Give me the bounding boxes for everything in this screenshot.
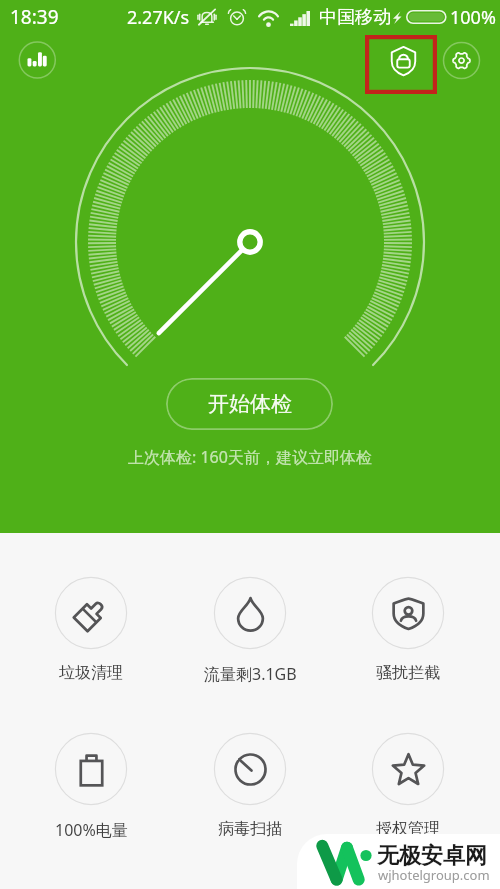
button[interactable]: 流量剩3.1GB (192, 569, 308, 694)
staticText: 中国移动 (319, 6, 391, 29)
staticText: wjhotelgroup.com (378, 866, 490, 884)
staticText: 2.27K/s (127, 5, 190, 30)
staticText: 100%电量 (55, 819, 128, 841)
button[interactable]: 授权管理 (350, 725, 466, 850)
staticText: 上次体检: 160天前，建议立即体检 (128, 446, 372, 468)
button[interactable]: 开始体检 (166, 378, 333, 430)
button[interactable]: 100%电量 (33, 725, 149, 850)
staticText: 流量剩3.1GB (204, 663, 297, 685)
button[interactable]: 骚扰拦截 (350, 569, 466, 694)
button[interactable]: 设置 (439, 38, 484, 83)
button[interactable]: 垃圾清理 (33, 569, 149, 694)
button[interactable]: 病毒查杀 (381, 39, 425, 83)
staticText: 开始体检 (208, 391, 292, 417)
button[interactable]: 病毒扫描 (192, 725, 308, 850)
staticText: 授权管理 (376, 819, 440, 839)
button[interactable]: 统计 (15, 38, 60, 83)
staticText: 无极安卓网 (377, 842, 487, 870)
staticText: 骚扰拦截 (376, 663, 440, 683)
staticText: 垃圾清理 (59, 663, 123, 683)
staticText: 病毒扫描 (218, 819, 282, 839)
staticText: 18:39 (10, 4, 59, 30)
staticText: 100% (450, 5, 496, 30)
